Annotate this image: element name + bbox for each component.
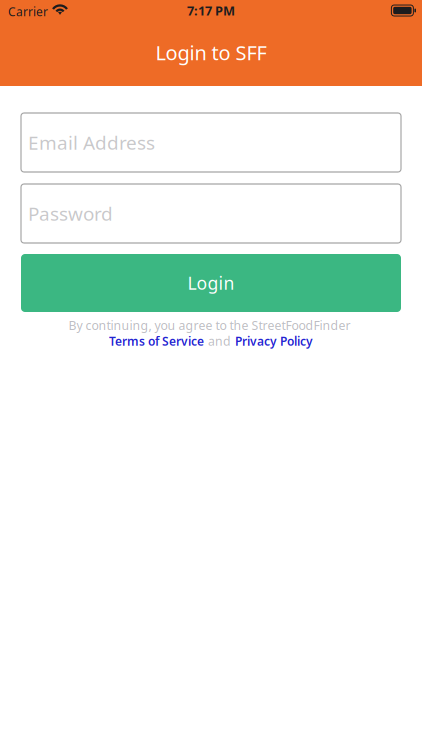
button[interactable]: Login: [21, 254, 401, 312]
staticText: Email Address: [28, 130, 155, 155]
staticText: Login to SFF: [155, 39, 266, 66]
button[interactable]: Password: [21, 184, 401, 243]
staticText: By continuing, you agree to the StreetFo…: [68, 317, 353, 334]
button[interactable]: Terms of Service: [109, 333, 204, 349]
staticText: and: [208, 333, 231, 349]
staticText: Carrier: [8, 3, 48, 20]
staticText: Terms of Service: [109, 333, 204, 349]
staticText: Login: [187, 271, 234, 295]
button[interactable]: Email Address: [21, 113, 401, 172]
button[interactable]: Privacy Policy: [235, 333, 313, 349]
staticText: 7:17 PM: [187, 2, 235, 19]
staticText: Privacy Policy: [235, 333, 313, 349]
staticText: Password: [28, 201, 113, 226]
